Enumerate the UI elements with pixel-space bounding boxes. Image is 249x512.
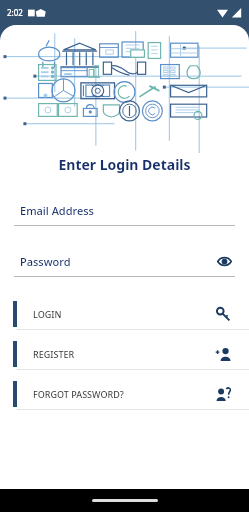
button[interactable]: Show password	[213, 251, 235, 271]
button[interactable]: REGISTER	[0, 339, 249, 370]
staticText: REGISTER	[33, 348, 75, 360]
staticText: 2:02	[7, 7, 23, 18]
staticText: LOGIN	[33, 308, 62, 320]
staticText: Password	[20, 254, 71, 269]
button[interactable]: FORGOT PASSWORD?	[0, 379, 249, 410]
staticText: FORGOT PASSWORD?	[33, 388, 124, 400]
staticText: Email Address	[20, 203, 94, 218]
staticText: Enter Login Details	[0, 155, 249, 174]
button[interactable]: LOGIN	[0, 299, 249, 330]
